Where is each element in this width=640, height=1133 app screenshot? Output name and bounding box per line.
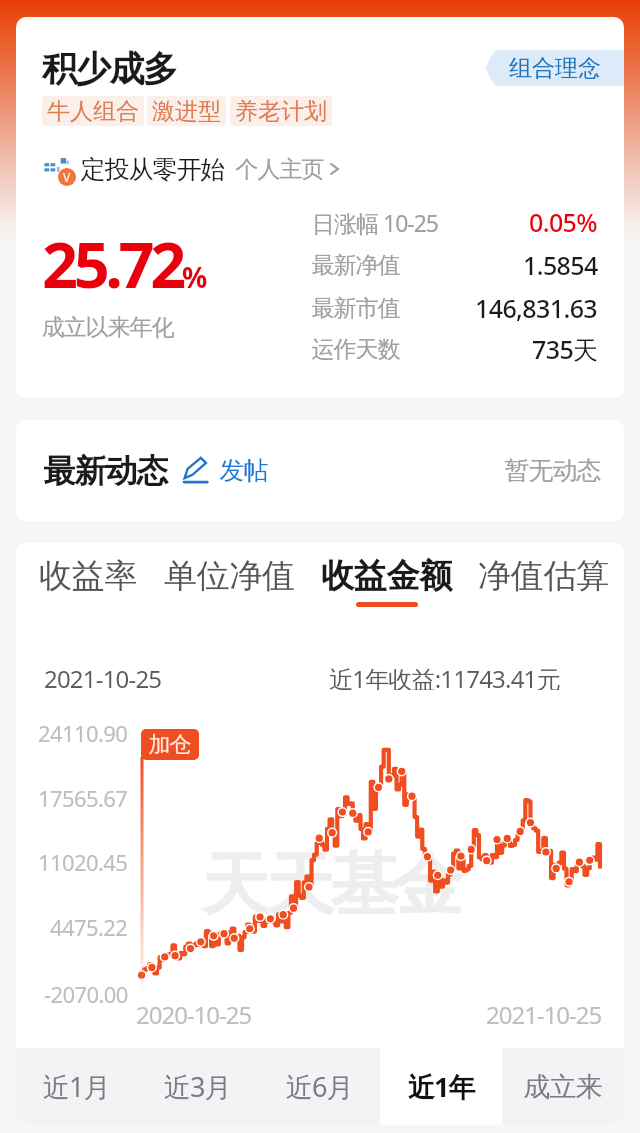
staticText: 日涨幅 10-25: [312, 207, 439, 238]
staticText: 近6月: [286, 1068, 353, 1105]
staticText: 暂无动态: [505, 455, 601, 486]
button[interactable]: 近6月: [258, 1048, 380, 1125]
button[interactable]: 净值估算: [472, 555, 615, 607]
staticText: 天天基金: [203, 843, 461, 929]
staticText: 运作天数: [312, 335, 400, 364]
button[interactable]: 近1年: [380, 1048, 502, 1125]
staticText: 加仓: [149, 731, 191, 759]
staticText: 净值估算: [478, 555, 609, 597]
staticText: 2021-10-25: [486, 998, 602, 1031]
staticText: 17565.67: [38, 783, 128, 813]
button[interactable]: User avatar: [42, 148, 340, 190]
button[interactable]: 成立来: [502, 1048, 624, 1125]
staticText: 组合理念: [509, 54, 601, 83]
button[interactable]: 收益率: [33, 555, 144, 607]
staticText: 735天: [532, 332, 598, 366]
staticText: V: [63, 169, 71, 185]
staticText: 24110.90: [38, 718, 128, 748]
button[interactable]: 养老计划: [230, 96, 332, 126]
staticText: 最新动态: [44, 451, 168, 491]
staticText: 1.5854: [523, 248, 598, 282]
staticText: 单位净值: [164, 555, 295, 597]
staticText: %: [182, 258, 207, 296]
staticText: 收益金额: [321, 555, 452, 597]
staticText: 2021-10-25: [44, 662, 162, 690]
staticText: 近1月: [43, 1068, 110, 1105]
button[interactable]: 单位净值: [158, 555, 301, 607]
staticText: 收益率: [39, 555, 138, 597]
staticText: 11020.45: [38, 847, 128, 877]
button[interactable]: Compose post: [183, 455, 268, 486]
staticText: 2020-10-25: [136, 998, 252, 1031]
staticText: 25.72: [42, 221, 182, 307]
staticText: 最新净值: [312, 251, 400, 280]
staticText: 近1年收益:11743.41元: [329, 662, 560, 690]
staticText: 成立以来年化: [42, 313, 174, 342]
staticText: 定投从零开始: [81, 154, 225, 185]
other: User avatar: [42, 152, 76, 186]
staticText: 激进型: [152, 97, 221, 126]
staticText: 4475.22: [50, 912, 128, 942]
button[interactable]: 近3月: [137, 1048, 258, 1125]
staticText: 146,831.63: [475, 291, 598, 325]
staticText: 发帖: [220, 455, 268, 486]
staticText: 最新市值: [312, 294, 400, 323]
button[interactable]: 组合理念: [485, 50, 624, 86]
staticText: 牛人组合: [47, 97, 139, 126]
button[interactable]: 收益金额: [315, 555, 458, 607]
button[interactable]: 近1月: [16, 1048, 137, 1125]
staticText: 0.05%: [529, 205, 598, 239]
other: Compose post: [183, 457, 210, 484]
other: Open personal homepage: [329, 159, 340, 179]
staticText: 近3月: [164, 1068, 231, 1105]
staticText: 积少成多: [42, 47, 177, 91]
button[interactable]: 牛人组合: [42, 96, 144, 126]
staticText: 养老计划: [235, 97, 327, 126]
staticText: 成立来: [524, 1070, 602, 1104]
staticText: -2070.00: [44, 979, 128, 1009]
staticText: 近1年: [408, 1068, 475, 1105]
button[interactable]: 激进型: [147, 96, 226, 126]
staticText: 个人主页: [236, 155, 324, 184]
